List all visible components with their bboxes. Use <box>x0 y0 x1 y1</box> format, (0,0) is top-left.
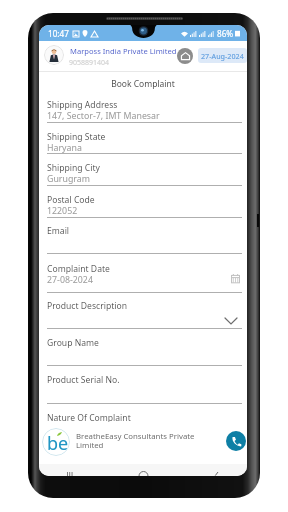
button[interactable]: Complaint Date <box>47 255 242 293</box>
staticText: Group Name <box>47 337 99 349</box>
staticText: Postal Code <box>47 194 95 206</box>
button[interactable]: Email <box>47 217 242 254</box>
button[interactable]: Nature Of Complaint <box>47 404 242 441</box>
staticText: BreatheEasy Consultants Private Limited <box>76 431 198 450</box>
staticText: Haryana <box>47 142 82 154</box>
button[interactable]: Home <box>177 48 193 64</box>
staticText: 27-08-2024 <box>47 274 93 286</box>
staticText: Product Description <box>47 300 128 312</box>
staticText: 27-Aug-2024 <box>201 51 244 61</box>
staticText: Product Serial No. <box>47 374 120 386</box>
staticText: 9058891404 <box>69 58 110 68</box>
staticText: Marposs India Private Limited <box>70 46 177 56</box>
staticText: Shipping State <box>47 131 106 143</box>
button[interactable]: Product Description <box>47 292 242 329</box>
button[interactable]: Profile <box>44 45 64 65</box>
staticText: Book Complaint <box>39 78 247 90</box>
staticText: Email <box>47 225 70 237</box>
staticText: Complaint Date <box>47 263 110 275</box>
button[interactable]: Call <box>226 431 246 451</box>
staticText: be <box>47 431 69 456</box>
button[interactable]: Postal Code <box>47 186 242 218</box>
button[interactable]: Product Serial No. <box>47 366 242 404</box>
button[interactable]: Shipping City <box>47 154 242 186</box>
staticText: 147, Sector-7, IMT Manesar <box>47 110 160 122</box>
button[interactable]: 27-Aug-2024 <box>198 48 247 63</box>
staticText: 86% <box>217 28 234 39</box>
staticText: Nature Of Complaint <box>47 412 131 424</box>
staticText: Gurugram <box>47 173 90 185</box>
button[interactable]: Group Name <box>47 329 242 366</box>
staticText: 10:47 <box>48 28 69 39</box>
button[interactable]: Shipping Address <box>47 91 242 123</box>
staticText: Shipping City <box>47 162 100 174</box>
staticText: Shipping Address <box>47 99 118 111</box>
staticText: 122052 <box>47 205 78 217</box>
button[interactable]: Shipping State <box>47 123 242 154</box>
